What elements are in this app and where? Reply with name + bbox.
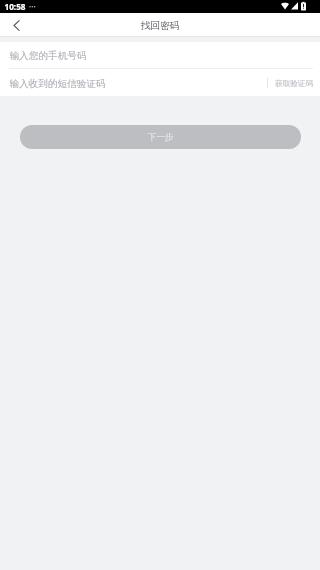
button[interactable]: 下一步 — [20, 125, 301, 149]
button[interactable]: 输入您的手机号码 — [0, 42, 320, 68]
staticText: 找回密码 — [140, 20, 180, 32]
staticText: 输入收到的短信验证码 — [9, 78, 106, 90]
staticText: 输入您的手机号码 — [9, 50, 87, 62]
staticText: 10:58 — [4, 1, 26, 12]
staticText: 下一步 — [147, 132, 174, 143]
button[interactable]: Back — [0, 13, 32, 36]
button[interactable]: 获取验证码 — [275, 78, 313, 88]
staticText: 获取验证码 — [275, 79, 313, 89]
button[interactable]: 输入收到的短信验证码 — [0, 69, 320, 96]
